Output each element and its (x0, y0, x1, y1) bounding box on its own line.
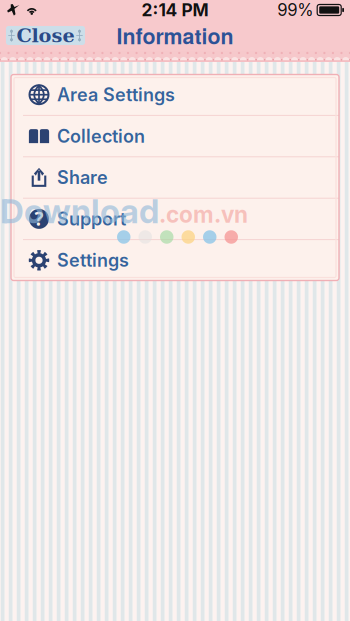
staticText: Area Settings (57, 84, 175, 106)
staticText: 2:14 PM (141, 0, 208, 20)
staticText: Download (0, 191, 159, 231)
staticText: ? (34, 206, 43, 231)
staticText: Support (57, 208, 126, 230)
staticText: Close (16, 24, 74, 47)
staticText: Share (57, 167, 108, 188)
staticText: .com.vn (159, 201, 248, 228)
staticText: Information (116, 20, 233, 51)
staticText: Collection (57, 125, 145, 147)
button[interactable]: Close (6, 26, 85, 45)
button[interactable]: Share (11, 157, 339, 198)
staticText: Settings (57, 249, 129, 271)
button[interactable]: Collection (11, 116, 339, 156)
button[interactable]: Settings (11, 240, 339, 280)
button[interactable]: Area Settings (11, 74, 339, 115)
staticText: 99% (277, 0, 313, 20)
button[interactable]: ? (11, 199, 339, 239)
